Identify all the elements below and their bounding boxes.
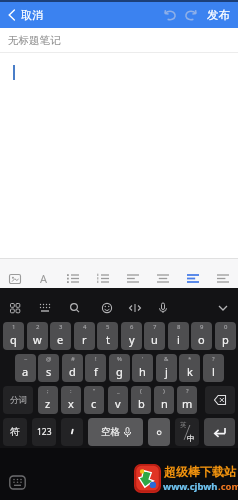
button[interactable] [205,386,235,414]
button[interactable] [61,418,83,446]
button[interactable]: _ [108,386,128,414]
staticText: ; [47,387,49,395]
staticText: 3 [59,323,63,331]
button[interactable]: 8 [168,322,189,350]
button[interactable]: 7 [144,322,165,350]
staticText: z [45,396,51,411]
button[interactable]: 1 [3,322,24,350]
button[interactable]: 发布 [207,2,238,28]
staticText: A [40,271,48,286]
button[interactable] [148,418,170,446]
staticText: e [57,332,64,347]
staticText: ~ [24,355,28,363]
button[interactable]: # [62,354,83,382]
staticText: 分词 [10,395,27,406]
staticText: ! [95,355,97,363]
button[interactable]: ! [85,354,106,382]
staticText: 1 [12,323,16,331]
button[interactable]: 9 [191,322,212,350]
button[interactable] [204,418,235,446]
staticText: @ [46,355,52,363]
button[interactable]: 3 [50,322,71,350]
button[interactable] [0,259,29,288]
button[interactable]: 空格 [88,418,143,446]
button[interactable]: 分词 [3,386,33,414]
staticText: f [94,364,98,379]
staticText: 英 [180,421,187,429]
staticText: www.cjbwh [163,480,218,493]
button[interactable] [9,474,26,491]
button[interactable]: & [156,354,177,382]
staticText: ( [140,387,142,395]
button[interactable]: 6 [121,322,142,350]
button[interactable] [134,464,161,493]
button[interactable] [88,259,118,288]
button[interactable] [164,9,176,21]
staticText: ' [142,355,144,363]
button[interactable] [208,259,238,288]
staticText: h [139,364,146,379]
staticText: .com [218,480,238,493]
button[interactable]: 符 [3,418,27,446]
staticText: o [198,332,205,347]
staticText: : [70,387,72,395]
button[interactable] [58,259,88,288]
button[interactable]: 123 [32,418,56,446]
button[interactable]: * [179,354,200,382]
staticText: v [115,396,121,411]
staticText: * [188,355,192,363]
staticText: 9 [200,323,204,331]
button[interactable]: ? [203,354,224,382]
staticText: i [177,332,180,347]
staticText: ? [212,355,215,363]
staticText: ? [186,387,189,395]
staticText: g [116,364,123,379]
staticText: & [164,355,169,363]
staticText: k [187,364,193,379]
staticText: 123 [37,426,52,438]
staticText: 中 [187,434,195,443]
staticText: 5 [106,323,110,331]
staticText: b [138,396,145,411]
staticText: ) [163,387,165,395]
button[interactable] [118,259,148,288]
button[interactable]: ) [154,386,174,414]
button[interactable] [185,9,197,21]
staticText: 空格 [101,426,120,438]
staticText: j [165,364,168,379]
staticText: p [222,332,229,347]
staticText: 符 [10,426,20,438]
button[interactable]: A [29,259,58,288]
button[interactable]: 5 [97,322,118,350]
staticText: 4 [83,323,87,331]
button[interactable]: 2 [27,322,48,350]
button[interactable]: ( [131,386,151,414]
staticText: a [22,364,29,379]
button[interactable]: 英 [175,418,199,446]
staticText: _ [117,387,120,395]
staticText: r [82,332,87,347]
button[interactable]: % [109,354,130,382]
button[interactable]: ' [132,354,153,382]
button[interactable]: 0 [215,322,236,350]
staticText: s [46,364,52,379]
staticText: % [117,355,122,363]
staticText: 无标题笔记 [8,34,61,47]
staticText: t [106,332,110,347]
button[interactable]: @ [38,354,59,382]
button[interactable] [178,259,208,288]
button[interactable]: ~ [15,354,36,382]
button[interactable]: " [84,386,104,414]
staticText: y [129,332,135,347]
button[interactable]: 取消 [0,2,43,28]
button[interactable]: ; [38,386,58,414]
staticText: q [10,332,17,347]
button[interactable]: : [61,386,81,414]
staticText: 2 [36,323,40,331]
button[interactable]: 4 [74,322,95,350]
button[interactable] [148,259,178,288]
button[interactable]: ? [177,386,197,414]
staticText: 0 [224,323,228,331]
staticText: u [151,332,158,347]
staticText: 超级棒下载站 [164,464,236,479]
